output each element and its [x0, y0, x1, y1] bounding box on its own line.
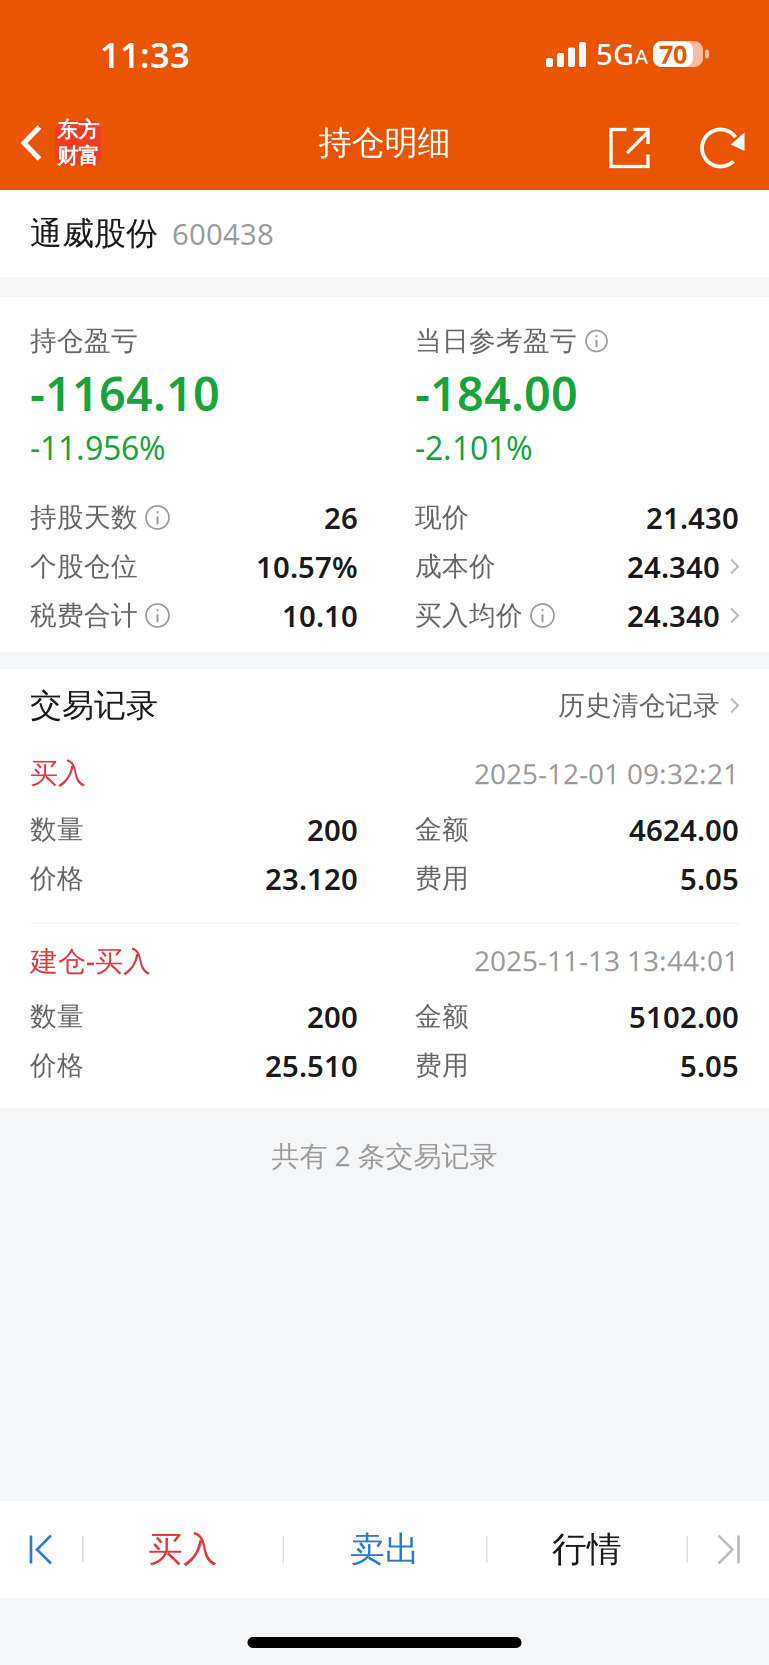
- staticText: 5102.00: [629, 997, 739, 1036]
- staticText: 持仓明细: [318, 122, 450, 163]
- staticText: 23.120: [265, 859, 358, 898]
- button[interactable]: 历史清仓记录: [558, 689, 739, 722]
- staticText: 数量: [30, 813, 84, 846]
- staticText: 4624.00: [629, 810, 739, 849]
- staticText: 价格: [30, 1049, 84, 1082]
- staticText: 200: [307, 810, 358, 849]
- staticText: 11:33: [100, 31, 190, 77]
- staticText: 数量: [30, 1000, 84, 1033]
- staticText: 5.05: [680, 859, 739, 898]
- staticText: 卖出: [350, 1528, 420, 1571]
- staticText: 2025-12-01 09:32:21: [474, 755, 739, 792]
- staticText: 交易记录: [30, 686, 158, 725]
- staticText: 建仓-买入: [30, 942, 151, 979]
- staticText: 成本价: [415, 550, 496, 583]
- staticText: 25.510: [265, 1046, 358, 1085]
- staticText: 历史清仓记录: [558, 689, 720, 722]
- staticText: 买入均价: [415, 599, 523, 632]
- staticText: 金额: [415, 813, 469, 846]
- button[interactable]: 买入: [83, 1501, 282, 1598]
- staticText: 费用: [415, 862, 469, 895]
- staticText: 当日参考盈亏: [415, 325, 577, 357]
- button[interactable]: 成本价: [415, 542, 739, 591]
- staticText: -11.956%: [30, 426, 166, 469]
- staticText: 200: [307, 997, 358, 1036]
- button[interactable]: 返回 东方财富: [0, 112, 101, 173]
- staticText: 买入: [148, 1528, 218, 1571]
- staticText: 21.430: [646, 498, 739, 537]
- staticText: 24.340: [627, 547, 720, 586]
- staticText: 通威股份: [30, 214, 158, 253]
- staticText: 税费合计: [30, 599, 138, 632]
- staticText: 24.340: [627, 596, 720, 635]
- staticText: 金额: [415, 1000, 469, 1033]
- button[interactable]: 买入均价: [415, 591, 739, 640]
- staticText: 价格: [30, 862, 84, 895]
- staticText: -2.101%: [415, 426, 533, 469]
- button[interactable]: 刷新: [689, 113, 757, 173]
- staticText: -1164.10: [30, 362, 220, 424]
- staticText: 持仓盈亏: [30, 325, 138, 357]
- staticText: 5G: [596, 34, 634, 73]
- staticText: 10.57%: [256, 547, 358, 586]
- button[interactable]: 下一只: [688, 1501, 769, 1598]
- staticText: 个股仓位: [30, 550, 138, 583]
- staticText: 26: [324, 498, 358, 537]
- staticText: A: [635, 43, 648, 69]
- staticText: 10.10: [282, 596, 358, 635]
- button[interactable]: 分享: [595, 112, 689, 173]
- staticText: 东方: [57, 117, 99, 143]
- staticText: -184.00: [415, 362, 578, 424]
- staticText: 财富: [57, 143, 99, 169]
- staticText: 费用: [415, 1049, 469, 1082]
- button[interactable]: 行情: [487, 1501, 686, 1598]
- button[interactable]: 卖出: [284, 1501, 486, 1598]
- staticText: 5.05: [680, 1046, 739, 1085]
- staticText: 600438: [172, 214, 274, 253]
- staticText: 70: [659, 37, 687, 71]
- staticText: 买入: [30, 756, 86, 791]
- staticText: 持股天数: [30, 501, 138, 534]
- staticText: 现价: [415, 501, 469, 534]
- staticText: 2025-11-13 13:44:01: [474, 942, 739, 979]
- staticText: 共有 2 条交易记录: [271, 1137, 497, 1174]
- button[interactable]: 上一只: [0, 1501, 82, 1598]
- staticText: 行情: [552, 1528, 622, 1571]
